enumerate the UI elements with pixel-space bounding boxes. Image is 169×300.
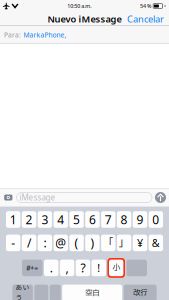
button[interactable]: あいう — [12, 285, 33, 300]
button[interactable]: @ — [53, 235, 68, 251]
button[interactable]: Take photo — [0, 188, 17, 206]
staticText: , — [65, 260, 68, 276]
button[interactable]: ! — [92, 260, 106, 276]
staticText: 」 — [119, 235, 130, 251]
button[interactable]: ( — [69, 235, 84, 251]
button[interactable]: 7 — [101, 211, 115, 228]
staticText: & — [152, 236, 160, 250]
button[interactable]: 9 — [133, 211, 147, 228]
button[interactable]: Cancelar — [127, 12, 169, 26]
staticText: 54 % — [140, 2, 151, 10]
staticText: 「 — [103, 235, 114, 251]
staticText: 4 — [57, 211, 64, 227]
button[interactable]: 0 — [149, 211, 163, 228]
button[interactable]: 」 — [117, 235, 131, 251]
staticText: ) — [90, 235, 94, 251]
button[interactable]: Send — [152, 188, 169, 206]
button[interactable]: ) — [85, 235, 100, 251]
button[interactable]: . — [44, 260, 58, 276]
staticText: iMessage — [20, 192, 56, 203]
staticText: 7 — [105, 211, 112, 227]
staticText: 1 — [10, 211, 17, 227]
staticText: Nuevo iMessage — [47, 13, 121, 25]
button[interactable]: #+= — [22, 260, 43, 276]
staticText: : — [43, 235, 46, 251]
staticText: 2 — [25, 211, 32, 227]
staticText: - — [11, 235, 15, 251]
button[interactable]: ? — [76, 260, 90, 276]
staticText: MarkaPhone, — [23, 31, 66, 39]
button[interactable]: / — [22, 235, 36, 251]
button[interactable]: 1 — [6, 211, 20, 228]
staticText: 10:50 a.m. — [67, 2, 91, 10]
button[interactable]: 3 — [38, 211, 52, 228]
staticText: 小 — [112, 262, 120, 274]
button[interactable]: : — [38, 235, 52, 251]
staticText: 3 — [41, 211, 48, 227]
button[interactable]: 5 — [69, 211, 84, 228]
button[interactable]: 小 — [107, 258, 125, 278]
button[interactable]: 2 — [22, 211, 36, 228]
staticText: / — [27, 235, 31, 251]
staticText: Para: — [4, 31, 21, 39]
button[interactable]: - — [6, 235, 20, 251]
staticText: ( — [75, 235, 79, 251]
staticText: ? — [80, 260, 85, 276]
staticText: 6 — [89, 211, 96, 227]
button[interactable]: 4 — [53, 211, 68, 228]
staticText: Cancelar — [127, 13, 164, 25]
button[interactable]: 空白 — [62, 285, 122, 300]
staticText: ¥ — [137, 236, 143, 250]
staticText: 改行 — [133, 287, 147, 298]
button[interactable]: 6 — [85, 211, 100, 228]
button[interactable]: 8 — [117, 211, 131, 228]
staticText: 空白 — [85, 287, 99, 298]
staticText: . — [50, 260, 53, 276]
button[interactable] — [126, 260, 147, 276]
button[interactable]: ¥ — [133, 235, 147, 251]
button[interactable]: , — [60, 260, 74, 276]
staticText: #+= — [26, 263, 38, 272]
staticText: 8 — [121, 211, 128, 227]
staticText: @ — [55, 235, 66, 251]
button[interactable]: 「 — [101, 235, 115, 251]
staticText: あいう — [16, 283, 30, 300]
staticText: 5 — [73, 211, 80, 227]
staticText: 9 — [136, 211, 143, 227]
button[interactable]: 改行 — [124, 285, 157, 300]
button[interactable]: & — [149, 235, 163, 251]
staticText: 0 — [152, 211, 159, 227]
staticText: ! — [97, 261, 100, 275]
